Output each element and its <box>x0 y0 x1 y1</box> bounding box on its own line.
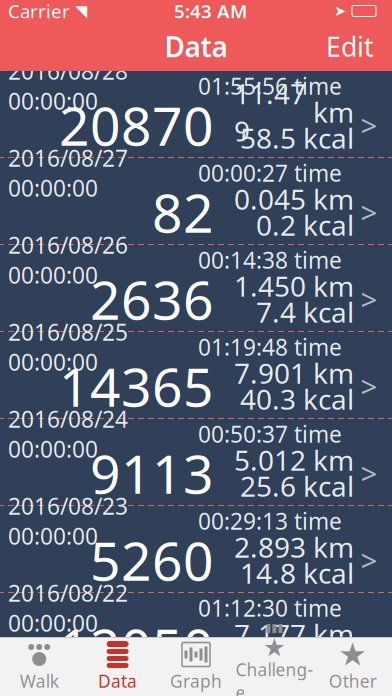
staticText: 14365 <box>59 351 214 421</box>
staticText: time <box>288 71 342 101</box>
staticText: kcal <box>296 293 354 331</box>
staticText: Graph <box>170 669 222 692</box>
staticText: > <box>360 540 377 579</box>
staticText: 2016/08/24 00:00:00 <box>8 404 128 464</box>
staticText: 25.6 <box>240 467 296 505</box>
button[interactable]: 2016/08/26 00:00:00 <box>0 245 392 331</box>
button[interactable]: Edit <box>314 23 386 70</box>
staticText: 1.450 <box>234 267 306 305</box>
staticText: 01:12:30 <box>198 593 288 623</box>
staticText: 2016/08/28 00:00:00 <box>8 56 128 116</box>
staticText: 5:43 AM <box>174 0 247 23</box>
staticText: 2016/08/23 00:00:00 <box>8 491 128 551</box>
staticText: 2016/08/25 00:00:00 <box>8 317 128 377</box>
button[interactable]: 2016/08/23 00:00:00 <box>0 506 392 592</box>
staticText: 7.177 <box>234 615 306 653</box>
staticText: km <box>306 180 354 218</box>
staticText: km <box>306 354 354 392</box>
staticText: time <box>288 419 342 449</box>
staticText: kcal <box>296 380 354 418</box>
staticText: kcal <box>296 641 354 679</box>
staticText: ➤ <box>334 3 346 19</box>
staticText: 36.8 <box>240 641 296 679</box>
staticText: kcal <box>296 206 354 244</box>
staticText: 0.045 <box>234 180 306 218</box>
staticText: Data <box>164 28 227 65</box>
staticText: kcal <box>296 467 354 505</box>
staticText: Edit <box>326 29 374 64</box>
staticText: ★ <box>338 636 367 673</box>
staticText: Carrier <box>8 0 70 23</box>
staticText: 2016/08/22 00:00:00 <box>8 578 128 638</box>
staticText: Data <box>98 669 137 692</box>
button[interactable]: 2016/08/27 00:00:00 <box>0 158 392 244</box>
staticText: 00:14:38 <box>198 245 288 275</box>
staticText: ◥ <box>75 2 87 20</box>
staticText: time <box>288 506 342 536</box>
staticText: km <box>306 528 354 566</box>
staticText: 11.479 <box>234 75 306 149</box>
button[interactable]: 2016/08/25 00:00:00 <box>0 332 392 418</box>
button[interactable]: Graph <box>157 641 235 693</box>
button[interactable]: Data <box>78 641 157 693</box>
staticText: 58.5 <box>240 119 296 157</box>
button[interactable]: 2016/08/24 00:00:00 <box>0 419 392 505</box>
staticText: 40.3 <box>240 380 296 418</box>
staticText: 12050 <box>59 612 214 682</box>
staticText: km <box>306 93 354 131</box>
staticText: ★ <box>263 633 286 662</box>
staticText: Walk <box>20 669 59 692</box>
staticText: 7.901 <box>234 354 306 392</box>
staticText: kcal <box>296 119 354 157</box>
staticText: time <box>288 332 342 362</box>
button[interactable]: 2016/08/28 00:00:00 <box>0 71 392 157</box>
staticText: 82 <box>152 177 214 247</box>
staticText: 14.8 <box>240 554 296 592</box>
staticText: 2016/08/26 00:00:00 <box>8 230 128 290</box>
staticText: > <box>360 105 377 144</box>
staticText: km <box>306 267 354 305</box>
button[interactable]: ★ <box>314 641 392 693</box>
staticText: 5.012 <box>234 441 306 479</box>
staticText: > <box>360 192 377 231</box>
staticText: 5260 <box>90 525 214 595</box>
staticText: > <box>360 366 377 405</box>
staticText: 2636 <box>90 264 214 334</box>
button[interactable]: Walk <box>0 641 78 693</box>
staticText: kcal <box>296 554 354 592</box>
staticText: time <box>288 593 342 623</box>
staticText: 01:19:48 <box>198 332 288 362</box>
staticText: Challenge <box>235 658 313 696</box>
staticText: 2.893 <box>234 528 306 566</box>
staticText: Other <box>329 669 377 692</box>
staticText: > <box>360 279 377 318</box>
staticText: 2016/08/27 00:00:00 <box>8 143 128 203</box>
button[interactable]: 2016/08/22 00:00:00 <box>0 593 392 679</box>
staticText: 01:55:56 <box>198 71 288 101</box>
staticText: 00:50:37 <box>198 419 288 449</box>
staticText: 00:00:27 <box>198 158 288 188</box>
staticText: 9113 <box>90 438 214 508</box>
staticText: > <box>360 453 377 492</box>
staticText: km <box>306 441 354 479</box>
staticText: > <box>360 627 377 666</box>
staticText: time <box>288 158 342 188</box>
staticText: 20870 <box>59 90 214 160</box>
staticText: 00:29:13 <box>198 506 288 536</box>
staticText: time <box>288 245 342 275</box>
staticText: km <box>306 615 354 653</box>
staticText: 7.4 <box>256 293 296 331</box>
button[interactable]: ★ <box>235 641 314 693</box>
staticText: 0.2 <box>256 206 296 244</box>
